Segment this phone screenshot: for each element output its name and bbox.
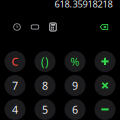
staticText: %	[70, 54, 79, 69]
staticText: 4	[12, 102, 18, 117]
staticText: 6	[72, 102, 78, 117]
staticText: 618.35918218	[54, 0, 112, 10]
button[interactable]: %	[61, 50, 89, 73]
button[interactable]: Add	[91, 50, 119, 73]
button[interactable]: Multiply	[91, 74, 119, 97]
staticText: 9	[72, 78, 78, 93]
button[interactable]: Delete	[98, 21, 110, 32]
staticText: 7	[12, 78, 18, 93]
button[interactable]: Subtract	[91, 98, 119, 120]
button[interactable]: C	[1, 50, 29, 73]
button[interactable]: ()	[31, 50, 59, 73]
button[interactable]: 7	[1, 74, 29, 97]
button[interactable]: 6	[61, 98, 89, 120]
button[interactable]: History	[11, 21, 22, 32]
staticText: 8	[42, 78, 48, 93]
staticText: 5	[42, 102, 48, 117]
staticText: ()	[41, 53, 49, 69]
button[interactable]: Keypad	[47, 21, 58, 32]
button[interactable]: 4	[1, 98, 29, 120]
button[interactable]: 8	[31, 74, 59, 97]
button[interactable]: Tape	[29, 21, 40, 32]
button[interactable]: 5	[31, 98, 59, 120]
button[interactable]: 9	[61, 74, 89, 97]
staticText: C	[11, 54, 18, 69]
